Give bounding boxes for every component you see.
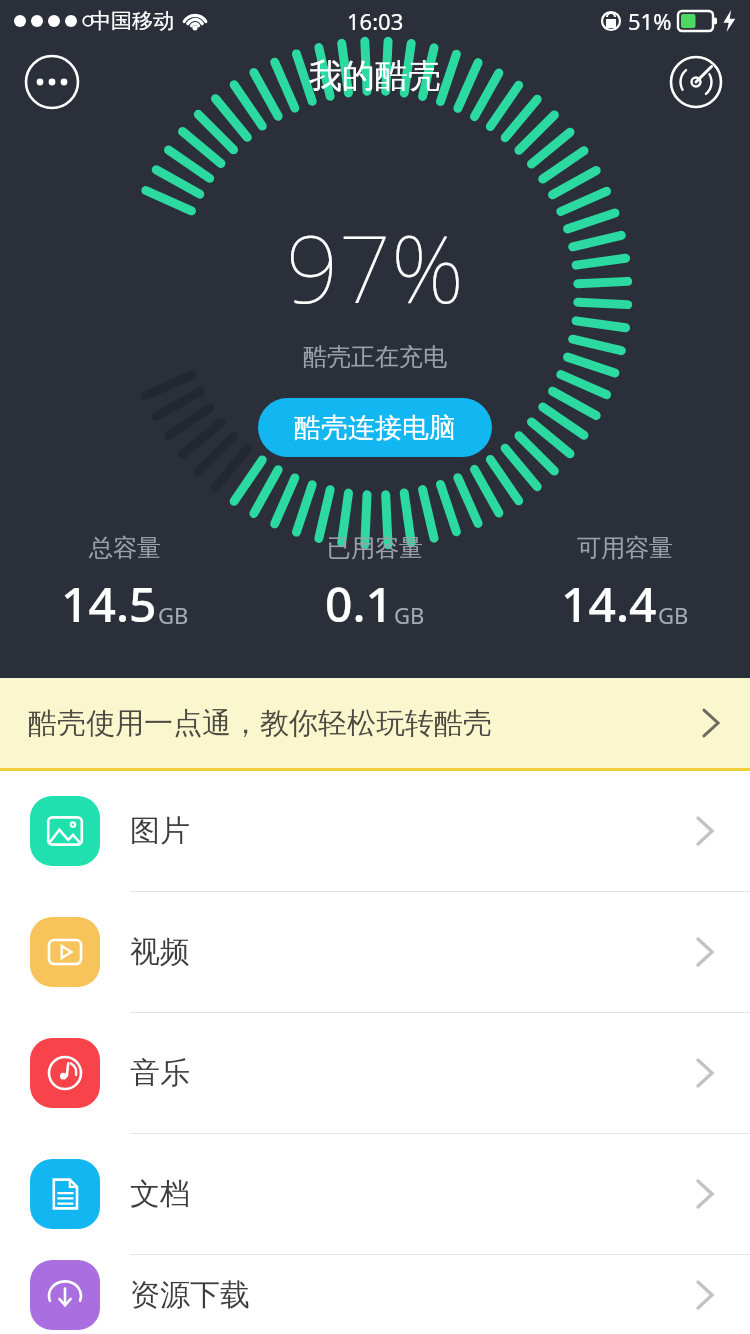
staticText: 资源下载 <box>130 1276 250 1314</box>
button[interactable]: 文档 <box>0 1134 750 1254</box>
staticText: 14.5 <box>61 571 157 636</box>
staticText: 图片 <box>130 812 190 850</box>
button[interactable]: 酷壳连接电脑 <box>258 398 492 457</box>
staticText: 酷壳正在充电 <box>303 342 447 372</box>
staticText: 酷壳使用一点通，教你轻松玩转酷壳 <box>28 705 492 742</box>
staticText: 中国移动 <box>90 8 174 34</box>
button[interactable]: 视频 <box>0 892 750 1012</box>
staticText: 97% <box>286 205 464 330</box>
staticText: 51% <box>628 6 672 36</box>
staticText: GB <box>394 600 425 630</box>
staticText: 酷壳连接电脑 <box>294 411 456 445</box>
staticText: GB <box>658 600 689 630</box>
staticText: 可用容量 <box>577 533 673 563</box>
staticText: 音乐 <box>130 1054 190 1092</box>
staticText: 我的酷壳 <box>309 55 441 97</box>
staticText: 16:03 <box>347 6 404 36</box>
staticText: 视频 <box>130 933 190 971</box>
button[interactable]: 酷壳使用一点通，教你轻松玩转酷壳 <box>0 678 750 768</box>
staticText: 总容量 <box>89 533 161 563</box>
staticText: 14.4 <box>561 571 657 636</box>
staticText: 0.1 <box>325 571 393 636</box>
button[interactable]: 资源下载 <box>0 1255 750 1334</box>
staticText: 已用容量 <box>327 533 423 563</box>
staticText: 文档 <box>130 1175 190 1213</box>
button[interactable]: Speed test <box>668 54 724 110</box>
staticText: GB <box>158 600 189 630</box>
button[interactable]: 音乐 <box>0 1013 750 1133</box>
button[interactable]: More options <box>24 54 80 110</box>
button[interactable]: 图片 <box>0 771 750 891</box>
